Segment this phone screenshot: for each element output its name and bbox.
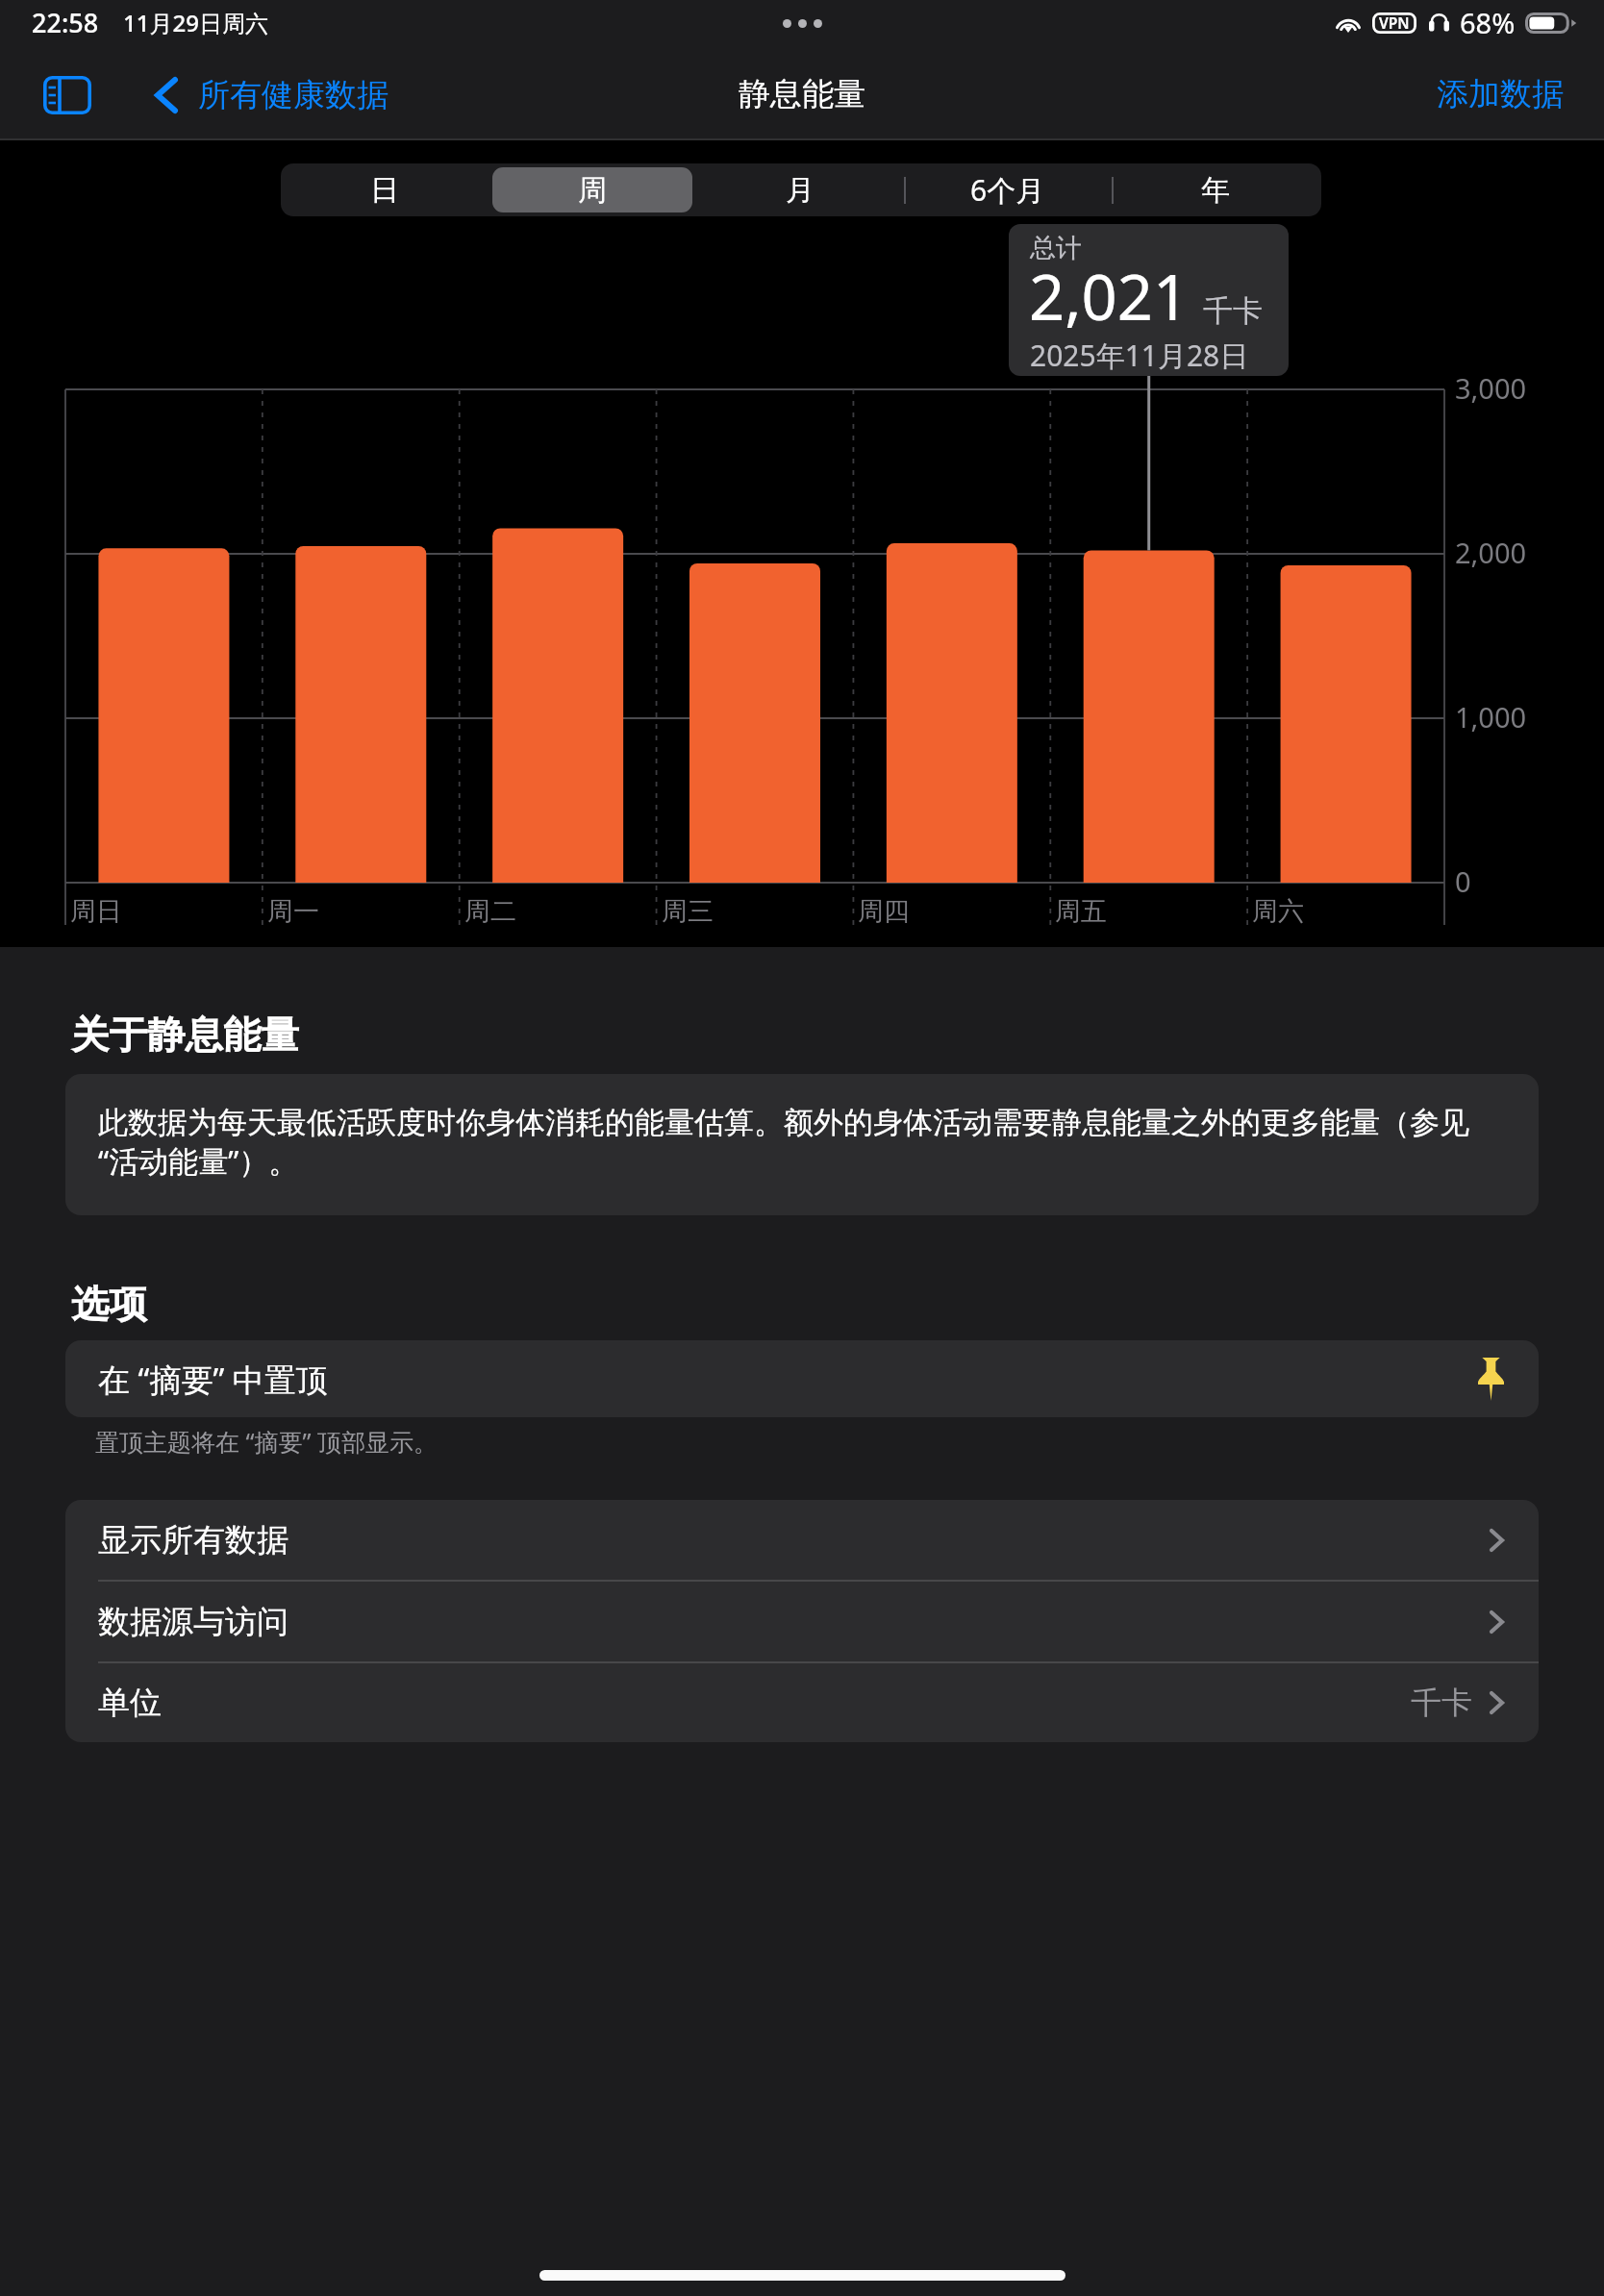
staticText: 68% [1460, 4, 1516, 41]
button[interactable]: 周 [489, 163, 696, 216]
staticText: 数据源与访问 [98, 1602, 288, 1642]
button[interactable]: Show sidebar [30, 63, 105, 127]
staticText: 在 “摘要” 中置顶 [98, 1358, 328, 1401]
staticText: 2,000 [1455, 534, 1527, 571]
button[interactable]: 年 [1112, 163, 1319, 216]
staticText: 月 [786, 172, 815, 209]
staticText: 周六 [1252, 895, 1304, 928]
button[interactable]: 在 “摘要” 中置顶 [65, 1340, 1539, 1417]
staticText: 周五 [1055, 895, 1107, 928]
staticText: 1,000 [1455, 698, 1527, 736]
staticText: 此数据为每天最低活跃度时你身体消耗的能量估算。额外的身体活动需要静息能量之外的更… [98, 1101, 1508, 1182]
staticText: 11月29日周六 [123, 7, 268, 38]
button[interactable]: 数据源与访问 [65, 1582, 1539, 1663]
staticText: 总计 [1030, 232, 1082, 264]
staticText: 周二 [464, 895, 516, 928]
staticText: 周四 [858, 895, 910, 928]
staticText: 6个月 [970, 170, 1045, 210]
staticText: 22:58 [32, 5, 99, 40]
button[interactable]: 月 [696, 163, 904, 216]
staticText: 显示所有数据 [98, 1520, 288, 1560]
staticText: 2,021 [1029, 254, 1190, 339]
staticText: 千卡 [1411, 1684, 1472, 1722]
button[interactable]: 单位 [65, 1663, 1539, 1742]
staticText: 所有健康数据 [198, 75, 388, 115]
staticText: 添加数据 [1437, 74, 1564, 114]
staticText: 3,000 [1455, 369, 1527, 407]
staticText: 日 [370, 172, 399, 209]
staticText: 千卡 [1203, 292, 1263, 330]
staticText: 静息能量 [739, 74, 865, 114]
staticText: 0 [1455, 862, 1471, 900]
staticText: 周一 [267, 895, 319, 928]
button[interactable]: 6个月 [904, 163, 1112, 216]
staticText: 置顶主题将在 “摘要” 顶部显示。 [95, 1425, 438, 1458]
staticText: 周三 [662, 895, 714, 928]
staticText: 周日 [70, 895, 122, 928]
button[interactable]: 日 [281, 163, 489, 216]
staticText: 周 [578, 172, 607, 209]
staticText: 关于静息能量 [71, 1011, 299, 1060]
button[interactable]: 显示所有数据 [65, 1500, 1539, 1582]
button[interactable]: 所有健康数据 [143, 65, 400, 125]
staticText: 选项 [71, 1281, 147, 1329]
button[interactable]: 添加数据 [1425, 64, 1575, 124]
staticText: 2025年11月28日 [1030, 336, 1249, 375]
staticText: VPN [1379, 12, 1410, 33]
staticText: 单位 [98, 1683, 162, 1723]
staticText: 年 [1201, 172, 1230, 209]
